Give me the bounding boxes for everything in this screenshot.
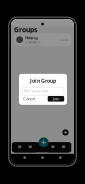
button[interactable]: Hiking	[14, 33, 71, 46]
staticText: Cancel	[23, 96, 35, 101]
button[interactable]: Join	[48, 96, 64, 102]
staticText: 3 members	[25, 41, 40, 44]
button[interactable]: Places	[48, 142, 58, 152]
button[interactable]: Cancel	[22, 95, 37, 102]
staticText: Join Group	[30, 77, 56, 84]
staticText: Join	[53, 96, 59, 101]
staticText: Hiking	[25, 35, 38, 40]
staticText: Enter group code	[24, 89, 49, 93]
button[interactable]: Profile	[62, 129, 69, 135]
staticText: Groups	[14, 25, 37, 34]
button[interactable]: Activity	[25, 142, 36, 152]
button[interactable]: New group	[39, 137, 49, 147]
button[interactable]: Chats	[14, 142, 25, 152]
button[interactable]: Profile	[58, 142, 69, 152]
staticText: 12:30	[60, 38, 69, 41]
